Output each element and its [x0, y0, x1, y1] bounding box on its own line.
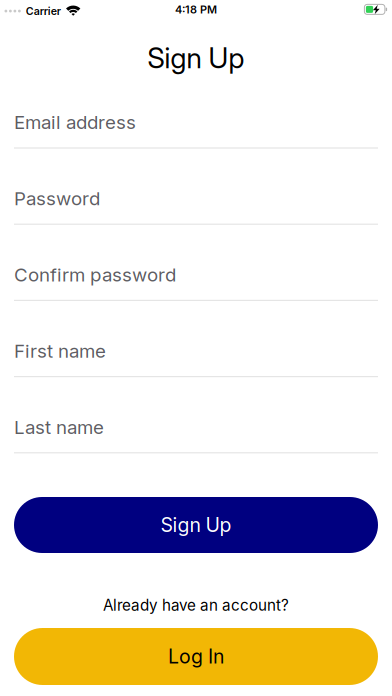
staticText: Password — [14, 187, 100, 210]
button[interactable]: Password — [14, 187, 378, 225]
button[interactable]: Confirm password — [14, 263, 378, 301]
staticText: Email address — [14, 111, 136, 134]
staticText: Last name — [14, 416, 104, 438]
button[interactable]: Email address — [14, 111, 378, 149]
button[interactable]: First name — [14, 340, 378, 377]
button[interactable]: Last name — [14, 416, 378, 453]
button[interactable]: Sign Up — [14, 497, 378, 553]
staticText: Log In — [168, 645, 224, 668]
staticText: First name — [14, 340, 106, 362]
staticText: 4:18 PM — [175, 3, 217, 16]
staticText: Already have an account? — [103, 596, 289, 614]
staticText: Confirm password — [14, 263, 176, 286]
staticText: Sign Up — [147, 41, 244, 75]
staticText: Carrier — [26, 5, 61, 17]
button[interactable]: Log In — [14, 628, 378, 685]
staticText: Sign Up — [160, 513, 231, 537]
